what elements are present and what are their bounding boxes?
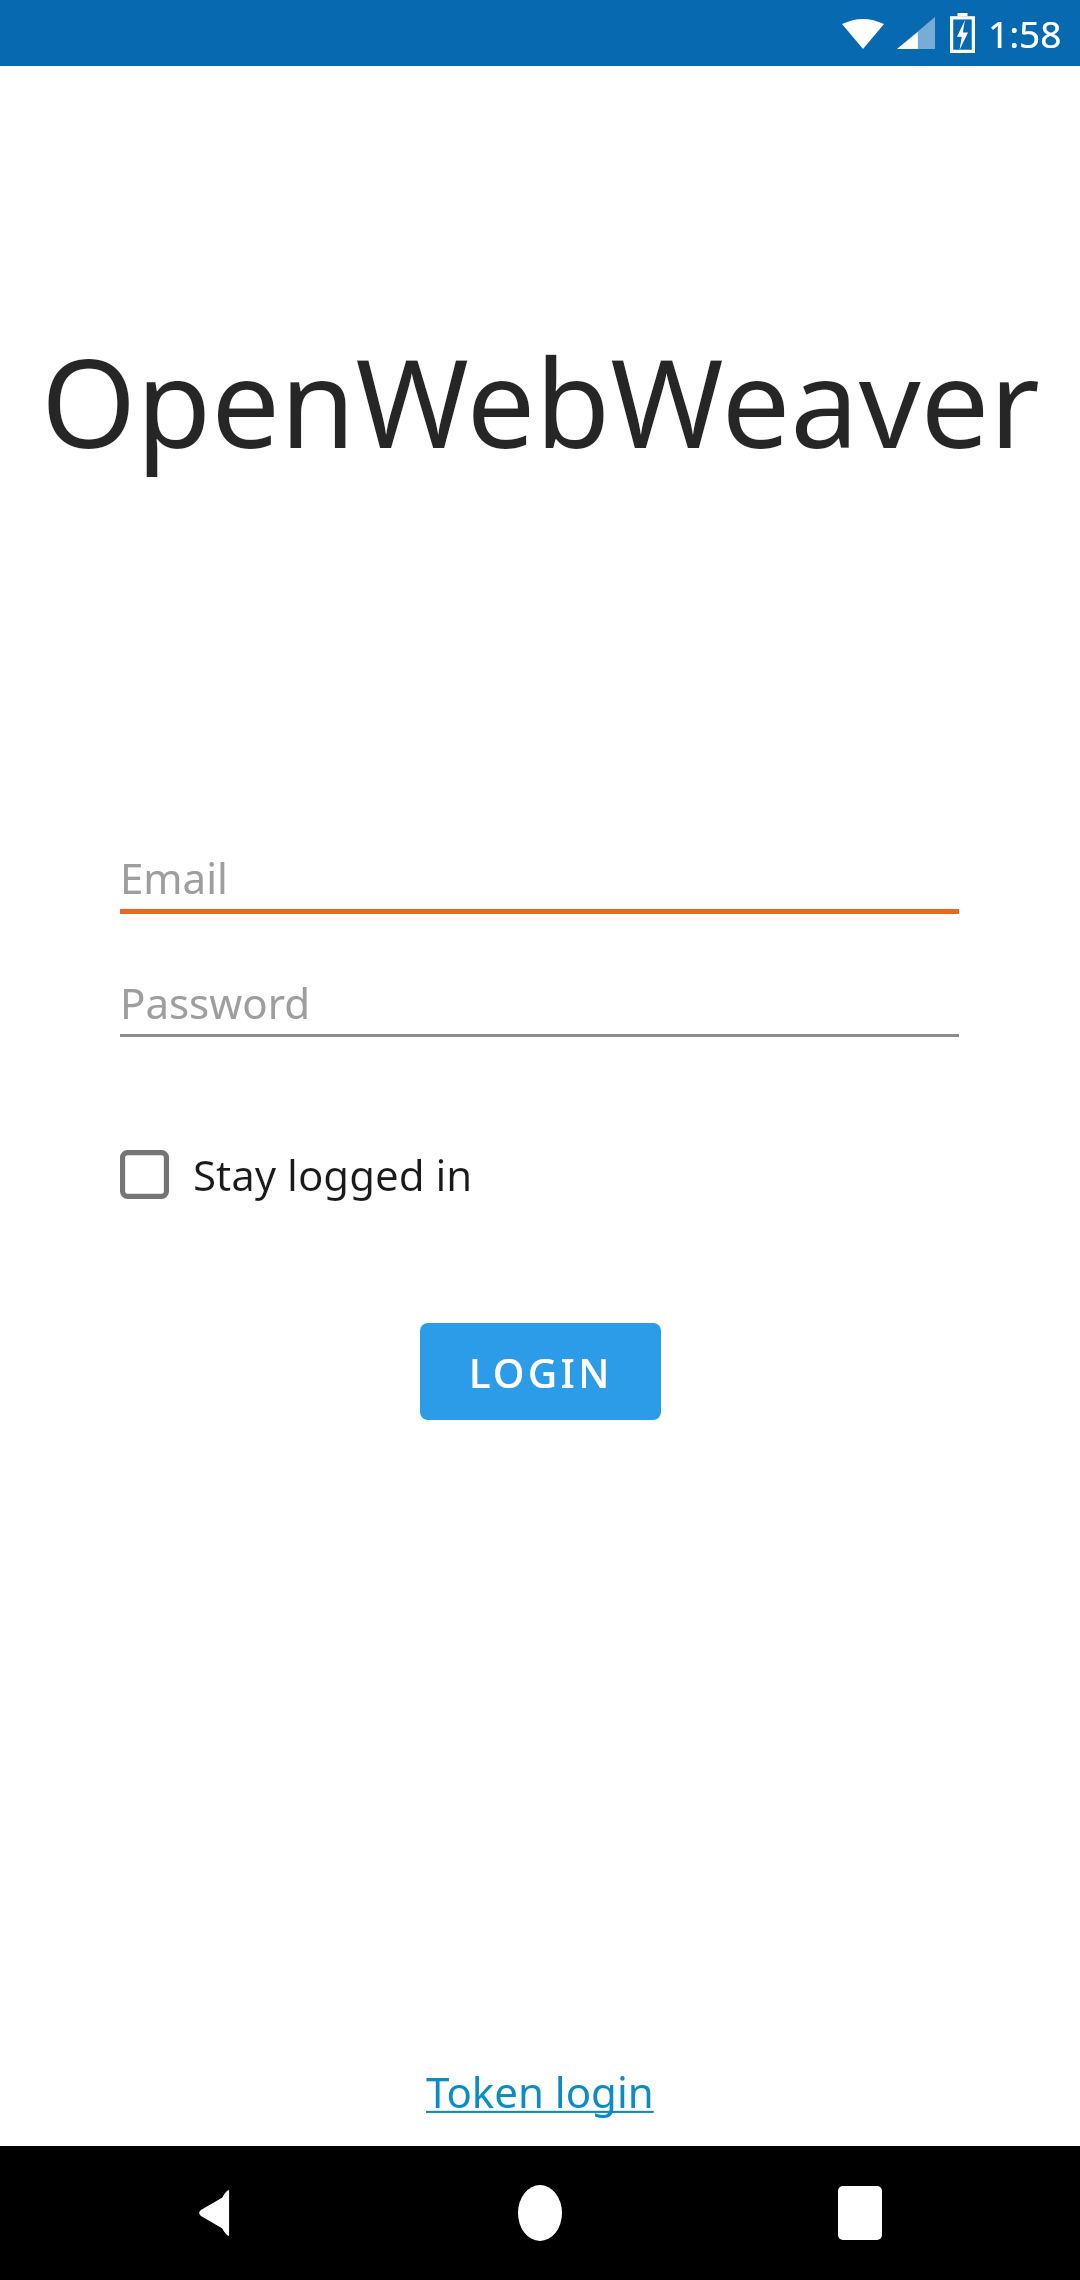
staticText: Email — [120, 849, 228, 906]
button[interactable]: Back — [160, 2146, 270, 2280]
button[interactable]: Home — [485, 2146, 595, 2280]
staticText: Password — [120, 974, 310, 1031]
button[interactable]: Email — [120, 845, 959, 909]
staticText: Stay logged in — [193, 1146, 473, 1203]
button[interactable]: Token login — [406, 2053, 674, 2130]
button[interactable]: Stay logged in — [109, 1136, 487, 1213]
button[interactable]: LOGIN — [420, 1323, 661, 1420]
staticText: LOGIN — [469, 1345, 613, 1399]
staticText: Token login — [426, 2063, 654, 2120]
button[interactable]: Recent apps — [805, 2146, 915, 2280]
staticText: OpenWebWeaver — [41, 318, 1040, 484]
button[interactable]: Password — [120, 970, 959, 1034]
staticText: 1:58 — [988, 8, 1062, 58]
